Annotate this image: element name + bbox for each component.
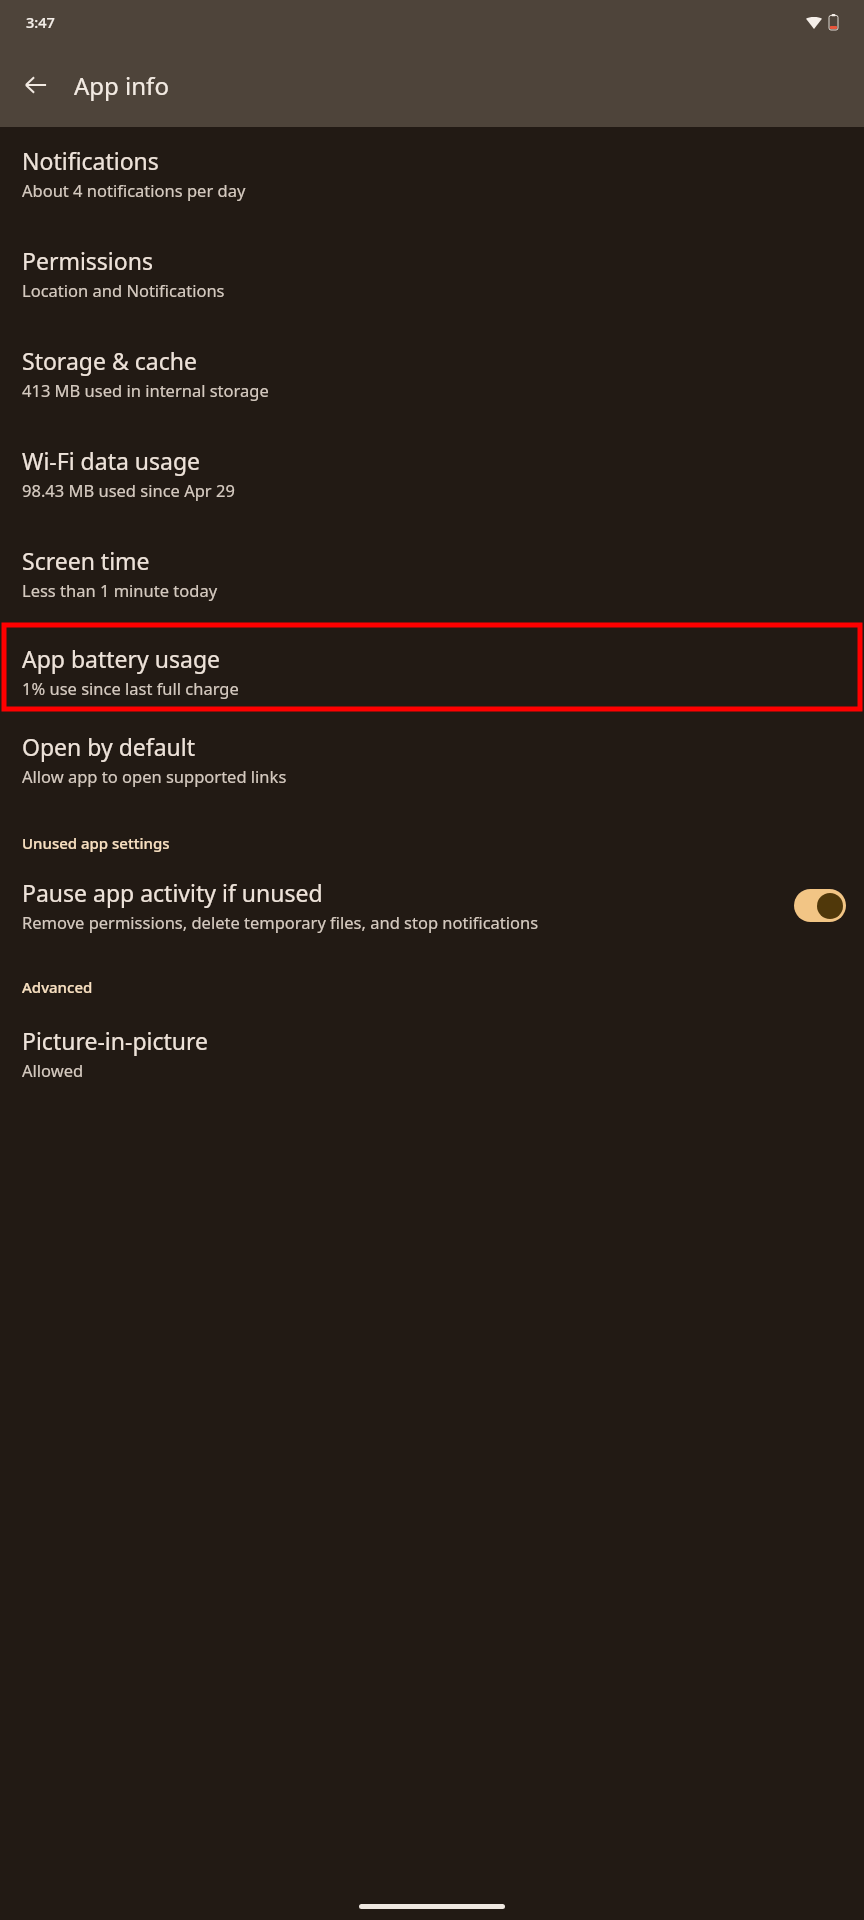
button[interactable]: Storage & cache: [0, 325, 864, 425]
staticText: Unused app settings: [22, 833, 842, 853]
staticText: Permissions: [22, 245, 153, 276]
button[interactable]: Screen time: [0, 525, 864, 625]
staticText: Advanced: [22, 977, 842, 997]
staticText: About 4 notifications per day: [22, 179, 246, 201]
staticText: Pause app activity if unused: [22, 877, 323, 908]
button[interactable]: Pause app activity toggle: [794, 889, 846, 922]
staticText: Allow app to open supported links: [22, 765, 287, 787]
staticText: App battery usage: [22, 643, 221, 674]
staticText: Screen time: [22, 545, 150, 576]
staticText: 3:47: [26, 12, 55, 32]
staticText: Storage & cache: [22, 345, 197, 376]
staticText: Allowed: [22, 1059, 84, 1081]
button[interactable]: Pause app activity if unused: [0, 861, 864, 951]
staticText: 413 MB used in internal storage: [22, 379, 269, 401]
button[interactable]: Picture-in-picture: [0, 1005, 864, 1091]
staticText: Remove permissions, delete temporary fil…: [22, 911, 539, 933]
staticText: 1% use since last full charge: [22, 677, 239, 699]
staticText: 98.43 MB used since Apr 29: [22, 479, 235, 501]
staticText: Wi-Fi data usage: [22, 445, 201, 476]
button[interactable]: Back: [8, 57, 64, 113]
button[interactable]: Notifications: [0, 127, 864, 225]
staticText: Location and Notifications: [22, 279, 225, 301]
button[interactable]: Open by default: [0, 709, 864, 809]
staticText: Picture-in-picture: [22, 1025, 209, 1056]
staticText: Notifications: [22, 145, 159, 176]
staticText: App info: [74, 69, 169, 102]
staticText: Open by default: [22, 731, 196, 762]
button[interactable]: App battery usage: [4, 625, 860, 709]
button[interactable]: Wi-Fi data usage: [0, 425, 864, 525]
staticText: Less than 1 minute today: [22, 579, 218, 601]
button[interactable]: Permissions: [0, 225, 864, 325]
